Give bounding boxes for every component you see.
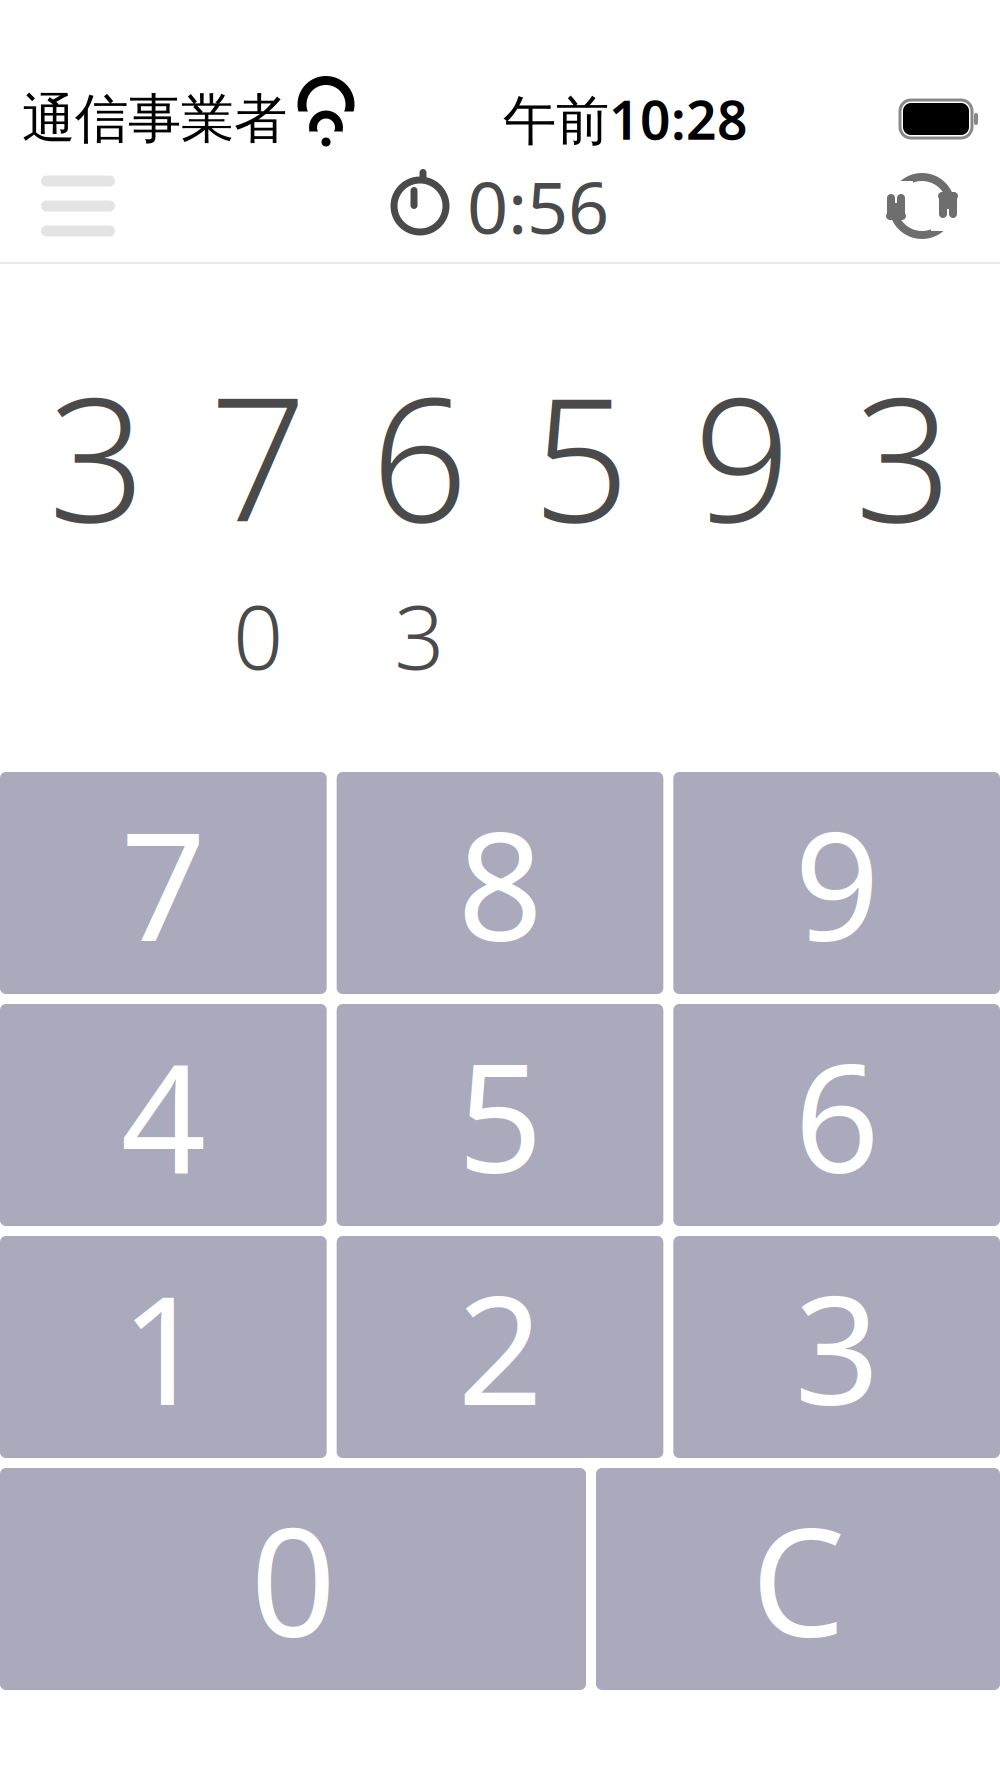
staticText: 0 — [233, 577, 283, 694]
button[interactable]: 5 — [337, 1004, 663, 1226]
staticText: 6 — [794, 1016, 879, 1214]
staticText: 3 — [794, 1248, 879, 1446]
button[interactable]: 1 — [0, 1236, 327, 1458]
staticText: 午前10:28 — [503, 84, 748, 154]
staticText: 0:56 — [467, 158, 609, 254]
staticText: 5 — [532, 342, 629, 569]
staticText: 7 — [121, 784, 206, 982]
button[interactable]: 4 — [0, 1004, 327, 1226]
button[interactable]: C — [596, 1468, 1000, 1690]
button[interactable]: 2 — [337, 1236, 663, 1458]
staticText: 3 — [855, 342, 952, 569]
button[interactable]: Refresh — [862, 150, 982, 262]
staticText: 9 — [794, 784, 879, 982]
staticText: 3 — [48, 342, 145, 569]
staticText: 5 — [457, 1016, 542, 1214]
button[interactable]: 3 — [673, 1236, 1000, 1458]
button[interactable]: 6 — [673, 1004, 1000, 1226]
staticText: 0 — [250, 1480, 335, 1678]
staticText: 7 — [209, 342, 306, 569]
staticText: 1 — [121, 1248, 206, 1446]
button[interactable]: 9 — [673, 772, 1000, 994]
staticText: 4 — [121, 1016, 206, 1214]
staticText: 通信事業者 — [22, 86, 287, 152]
button[interactable]: 8 — [337, 772, 663, 994]
staticText: 6 — [371, 342, 468, 569]
staticText: 8 — [457, 784, 542, 982]
button[interactable]: Menu — [18, 150, 138, 262]
staticText: 9 — [693, 342, 790, 569]
button[interactable]: 0 — [0, 1468, 586, 1690]
staticText: C — [751, 1480, 845, 1678]
button[interactable]: 7 — [0, 772, 327, 994]
staticText: 3 — [394, 577, 444, 694]
staticText: 2 — [457, 1248, 542, 1446]
